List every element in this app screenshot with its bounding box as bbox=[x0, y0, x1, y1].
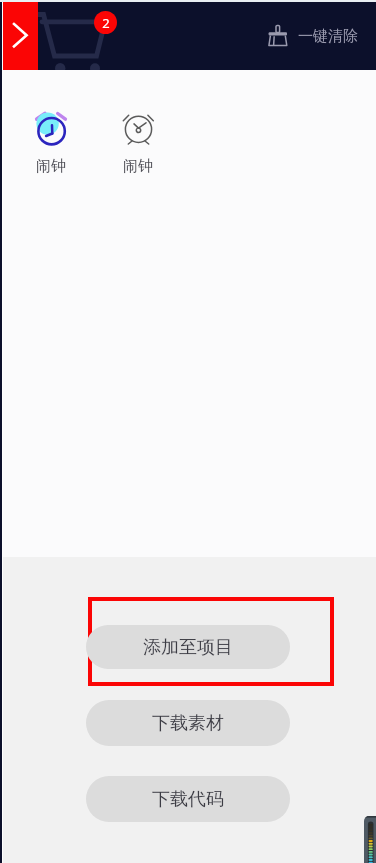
staticText: 添加至项目 bbox=[143, 636, 233, 659]
button[interactable]: 闹钟 bbox=[21, 110, 81, 176]
button[interactable]: 下载代码 bbox=[86, 776, 290, 822]
button[interactable]: 下载素材 bbox=[86, 700, 290, 746]
staticText: 下载代码 bbox=[152, 788, 224, 811]
staticText: 下载素材 bbox=[152, 712, 224, 735]
button[interactable]: Back bbox=[0, 2, 38, 70]
staticText: 2 bbox=[102, 14, 110, 32]
staticText: 闹钟 bbox=[123, 157, 153, 176]
staticText: 一键清除 bbox=[298, 27, 358, 46]
button[interactable]: 闹钟 bbox=[108, 110, 168, 176]
button[interactable]: 添加至项目 bbox=[86, 625, 290, 669]
staticText: 闹钟 bbox=[36, 157, 66, 176]
button[interactable]: 一键清除 bbox=[258, 19, 376, 53]
